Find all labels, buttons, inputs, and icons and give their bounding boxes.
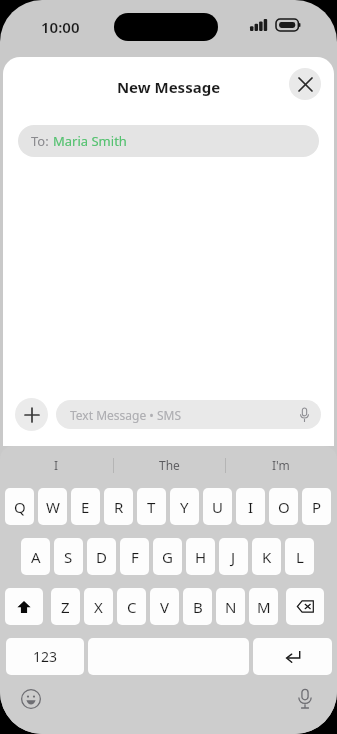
staticText: 10:00 <box>41 17 80 37</box>
staticText: Text Message • SMS <box>70 407 182 423</box>
button[interactable]: F <box>120 538 149 575</box>
button[interactable]: K <box>252 538 281 575</box>
staticText: X <box>94 597 103 617</box>
button[interactable]: To: <box>18 125 319 157</box>
staticText: L <box>296 547 304 567</box>
staticText: B <box>193 597 203 617</box>
button[interactable]: A <box>21 538 50 575</box>
button[interactable]: Q <box>5 488 34 525</box>
staticText: To: <box>31 132 53 150</box>
button[interactable]: M <box>249 588 278 625</box>
staticText: 123 <box>33 647 58 666</box>
button[interactable]: O <box>269 488 298 525</box>
staticText: O <box>278 497 290 517</box>
staticText: M <box>257 597 271 617</box>
button[interactable]: G <box>153 538 182 575</box>
button[interactable]: Text Message • SMS <box>56 400 321 429</box>
button[interactable]: Add attachment <box>15 398 48 431</box>
button[interactable]: B <box>183 588 212 625</box>
button[interactable]: W <box>38 488 67 525</box>
button[interactable]: L <box>285 538 314 575</box>
staticText: C <box>127 597 137 617</box>
button[interactable]: Z <box>51 588 80 625</box>
staticText: G <box>162 547 173 567</box>
button[interactable]: D <box>87 538 116 575</box>
button[interactable]: S <box>54 538 83 575</box>
staticText: T <box>147 497 156 517</box>
staticText: I <box>54 457 59 473</box>
staticText: N <box>225 597 237 617</box>
button[interactable]: P <box>302 488 331 525</box>
staticText: R <box>114 497 124 517</box>
staticText: Z <box>61 597 70 617</box>
button[interactable]: R <box>104 488 133 525</box>
staticText: A <box>31 547 41 567</box>
staticText: Q <box>14 497 26 517</box>
button[interactable]: V <box>150 588 179 625</box>
staticText: W <box>46 497 60 517</box>
staticText: V <box>160 597 170 617</box>
button[interactable]: Return <box>253 638 332 675</box>
button[interactable]: Y <box>170 488 199 525</box>
staticText: The <box>159 457 180 473</box>
button[interactable]: H <box>186 538 215 575</box>
staticText: Y <box>180 497 189 517</box>
staticText: New Message <box>3 77 334 97</box>
button[interactable]: I <box>236 488 265 525</box>
staticText: K <box>262 547 272 567</box>
button[interactable]: Shift <box>5 588 43 625</box>
staticText: Maria Smith <box>53 132 127 150</box>
staticText: F <box>131 547 139 567</box>
button[interactable]: X <box>84 588 113 625</box>
button[interactable]: Emoji <box>18 686 44 712</box>
staticText: P <box>312 497 322 517</box>
other: Dictate <box>300 408 309 422</box>
button[interactable]: U <box>203 488 232 525</box>
staticText: S <box>64 547 73 567</box>
staticText: U <box>212 497 223 517</box>
button[interactable]: E <box>71 488 100 525</box>
button[interactable]: Close <box>289 68 321 100</box>
button[interactable]: N <box>216 588 245 625</box>
staticText: D <box>96 547 107 567</box>
staticText: H <box>195 547 207 567</box>
button[interactable]: J <box>219 538 248 575</box>
staticText: J <box>231 547 236 567</box>
button[interactable]: T <box>137 488 166 525</box>
button[interactable]: I <box>0 446 113 484</box>
staticText: I <box>248 497 254 517</box>
staticText: I'm <box>272 457 290 473</box>
button[interactable]: 123 <box>6 638 84 675</box>
button[interactable]: I'm <box>225 446 337 484</box>
button[interactable]: Dictation <box>292 686 318 712</box>
button[interactable]: C <box>117 588 146 625</box>
button[interactable]: Backspace <box>286 588 324 625</box>
button[interactable]: The <box>113 446 225 484</box>
staticText: E <box>81 497 90 517</box>
